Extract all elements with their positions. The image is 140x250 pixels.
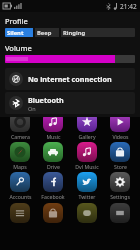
staticText: Dvl Music (75, 163, 99, 170)
staticText: Bluetooth (28, 95, 64, 105)
button[interactable]: Gallery (72, 112, 102, 140)
button[interactable]: Store (105, 142, 135, 170)
button[interactable]: Beep (35, 28, 59, 37)
button[interactable]: Facebook (38, 172, 68, 200)
staticText: Store (114, 163, 127, 170)
button[interactable]: Videos (105, 112, 135, 140)
staticText: 21:42 (120, 2, 137, 11)
staticText: Gallery (78, 133, 96, 140)
button[interactable] (5, 55, 135, 63)
staticText: Accounts (9, 193, 32, 200)
staticText: Ringing (63, 29, 86, 37)
button[interactable]: Accounts (5, 172, 35, 200)
staticText: Videos (112, 133, 129, 140)
button[interactable] (38, 203, 68, 223)
button[interactable] (5, 203, 35, 223)
button[interactable] (72, 203, 102, 223)
staticText: Twitter (78, 193, 96, 200)
staticText: Beep (37, 29, 52, 37)
button[interactable]: Drive (38, 142, 68, 170)
staticText: No internet connection (28, 74, 112, 84)
staticText: Drive (47, 163, 60, 170)
button[interactable]: Maps (5, 142, 35, 170)
staticText: Silent (7, 29, 24, 37)
staticText: Settings (110, 193, 130, 200)
button[interactable]: Silent (5, 28, 33, 37)
staticText: Facebook (41, 193, 65, 200)
button[interactable]: Bluetooth (5, 92, 135, 114)
button[interactable]: Internet connection status (5, 68, 135, 90)
staticText: Camera (11, 133, 30, 140)
button[interactable]: Camera (5, 112, 35, 140)
button[interactable]: Settings (105, 172, 135, 200)
staticText: Music (46, 133, 61, 140)
staticText: On (28, 105, 36, 112)
button[interactable]: Dvl Music (72, 142, 102, 170)
staticText: Profile (5, 16, 28, 26)
other: Internet connection status (9, 72, 23, 86)
button[interactable]: Music (38, 112, 68, 140)
staticText: Maps (13, 163, 27, 170)
staticText: Volume (5, 43, 32, 53)
other: Bluetooth (9, 96, 23, 110)
button[interactable]: Ringing (61, 28, 135, 37)
button[interactable]: Twitter (72, 172, 102, 200)
button[interactable] (105, 203, 135, 223)
